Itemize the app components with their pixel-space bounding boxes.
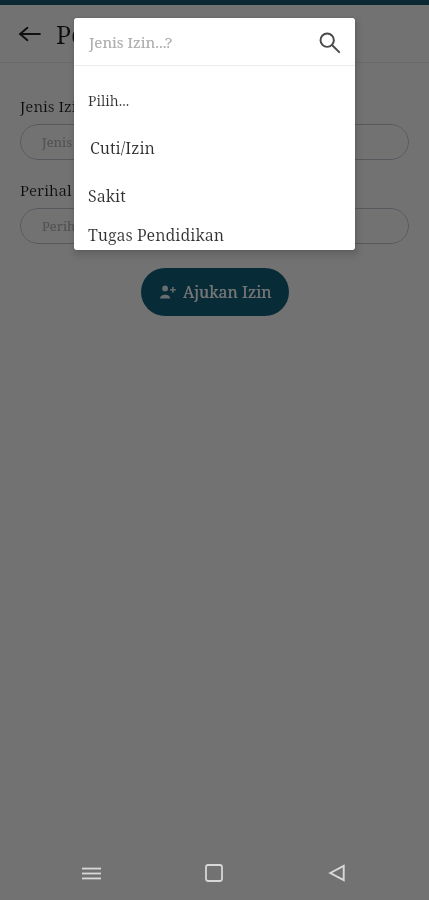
staticText: Sakit bbox=[88, 185, 126, 207]
button[interactable]: Sakit bbox=[74, 172, 355, 220]
staticText: Perihal : bbox=[20, 180, 80, 200]
button[interactable]: Tugas Pendidikan bbox=[74, 220, 355, 250]
button[interactable]: Recents bbox=[67, 849, 115, 897]
staticText: Jenis Izin bbox=[42, 133, 100, 151]
staticText: Cuti/Izin bbox=[90, 137, 155, 159]
button[interactable]: Search bbox=[311, 24, 347, 60]
staticText: Jenis Izin...? bbox=[89, 32, 311, 52]
staticText: Tugas Pendidikan bbox=[88, 224, 225, 246]
button[interactable]: Back bbox=[313, 849, 361, 897]
staticText: Ajukan Izin bbox=[183, 281, 272, 303]
staticText: Jenis Izin : bbox=[20, 96, 95, 116]
button[interactable]: Jenis Izin...? bbox=[74, 18, 355, 65]
staticText: Perihal bbox=[42, 217, 87, 235]
button[interactable]: Back bbox=[10, 14, 50, 54]
button[interactable]: Perihal bbox=[20, 208, 409, 244]
button[interactable]: Cuti/Izin bbox=[74, 124, 355, 172]
button[interactable]: Ajukan Izin bbox=[141, 268, 289, 316]
button[interactable]: Jenis Izin bbox=[20, 124, 409, 160]
staticText: Pengajuan Izin bbox=[56, 17, 235, 51]
staticText: Pilih... bbox=[88, 91, 130, 110]
button[interactable]: Home bbox=[190, 849, 238, 897]
button[interactable]: Pilih... bbox=[74, 76, 355, 124]
